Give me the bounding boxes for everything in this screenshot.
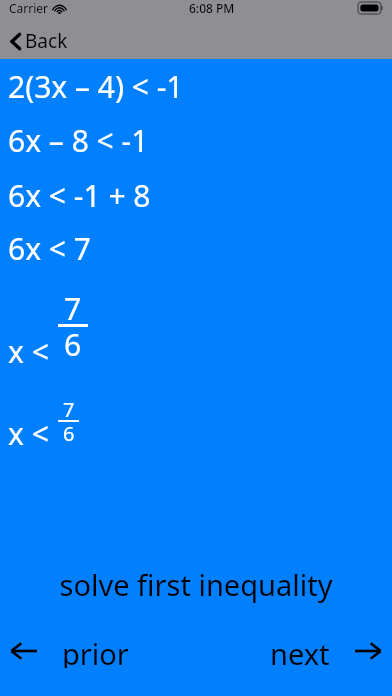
button[interactable]: next [258,626,392,676]
button[interactable]: Previous [0,626,141,676]
staticText: 6x < 7 [8,228,91,269]
staticText: prior [62,634,129,668]
staticText: next [270,634,330,668]
other: Next [355,640,382,662]
staticText: 2(3x – 4) < -1 [8,66,184,107]
other: Previous [10,640,37,662]
staticText: x < [8,413,49,454]
staticText: 6x < -1 + 8 [8,175,151,216]
button[interactable]: Back [0,23,82,59]
staticText: 6 [64,324,82,365]
staticText: solve first inequality [8,565,384,604]
staticText: 7 [63,396,75,423]
staticText: 6x – 8 < -1 [8,120,149,161]
staticText: x < [8,331,49,372]
button[interactable]: solve first inequality [0,560,392,609]
staticText: Back [25,28,68,54]
staticText: 6:08 PM [189,0,235,16]
staticText: 7 [64,288,82,329]
staticText: Carrier [9,0,49,16]
staticText: 6 [63,420,75,447]
